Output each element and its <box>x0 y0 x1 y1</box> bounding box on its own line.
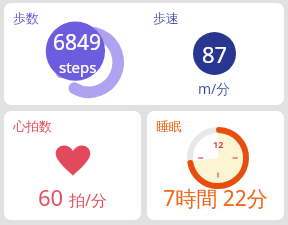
staticText: 睡眠 <box>156 118 182 134</box>
staticText: m/分 <box>198 79 231 98</box>
button[interactable]: 歩数 <box>4 3 144 105</box>
staticText: 6849 <box>53 28 102 57</box>
staticText: 60 <box>38 182 64 212</box>
staticText: 拍/分 <box>69 189 107 211</box>
button[interactable]: 睡眠 <box>147 111 284 220</box>
button[interactable]: 歩速 <box>144 3 284 105</box>
staticText: 心拍数 <box>13 118 52 134</box>
other: Heart rate <box>55 144 91 176</box>
button[interactable]: 心拍数 <box>4 111 141 220</box>
staticText: 12 <box>213 138 224 150</box>
other: Steps 6849 <box>41 15 127 101</box>
staticText: 7時間 22分 <box>163 184 268 213</box>
other: Sleep duration <box>187 127 249 189</box>
staticText: 87 <box>202 39 228 69</box>
staticText: steps <box>59 57 97 77</box>
staticText: 歩速 <box>153 10 179 26</box>
staticText: 歩数 <box>13 10 39 26</box>
